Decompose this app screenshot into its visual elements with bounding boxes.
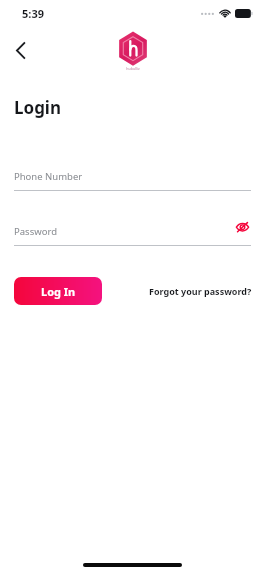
staticText: Login [14,96,62,119]
button[interactable]: Log In [14,277,102,305]
staticText: Log In [41,284,76,299]
staticText: Phone Number [14,170,83,183]
staticText: Forgot your password? [149,285,252,297]
button[interactable]: Back [4,34,36,66]
button[interactable]: Password [14,225,57,238]
staticText: hubulliz [126,66,140,71]
staticText: 5:39 [22,6,44,21]
button[interactable]: Forgot your password? [149,285,252,297]
button[interactable]: Toggle password visibility [233,220,251,234]
button[interactable]: Phone Number [14,170,251,191]
